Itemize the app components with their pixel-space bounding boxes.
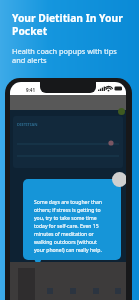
staticText: 9:41 — [26, 87, 35, 93]
button[interactable]: Nav item — [86, 285, 106, 297]
button[interactable]: Nav item — [109, 285, 126, 297]
staticText: Health coach popups with tips and alerts — [12, 46, 131, 65]
staticText: Your Dietitian In Your Pocket — [12, 11, 131, 38]
staticText: DIETITIAN — [17, 122, 38, 127]
button[interactable]: Nav item — [63, 285, 83, 297]
staticText: Some days are tougher than others; if st… — [34, 199, 104, 254]
button[interactable]: Nav item — [40, 285, 60, 297]
